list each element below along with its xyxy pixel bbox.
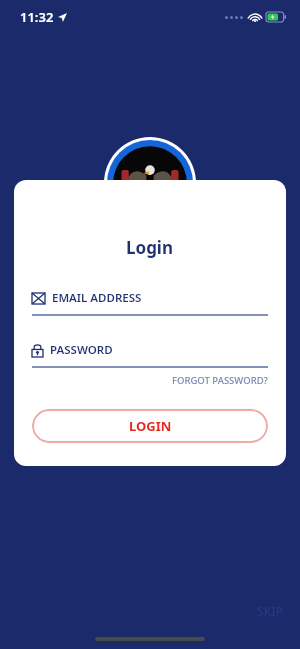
button[interactable]: FORGOT PASSWORD?	[172, 374, 268, 387]
staticText: LOGIN	[129, 417, 172, 435]
staticText: Login	[126, 236, 174, 259]
button[interactable]: EMAIL ADDRESS	[32, 290, 268, 316]
staticText: PASSWORD	[50, 342, 113, 358]
button[interactable]: PASSWORD	[32, 342, 268, 368]
staticText: 11:32	[20, 8, 54, 26]
button[interactable]: SKIP	[257, 603, 284, 619]
staticText: EMAIL ADDRESS	[52, 290, 142, 306]
button[interactable]: LOGIN	[32, 409, 268, 443]
staticText: FORGOT PASSWORD?	[172, 374, 268, 387]
staticText: SKIP	[257, 603, 284, 619]
